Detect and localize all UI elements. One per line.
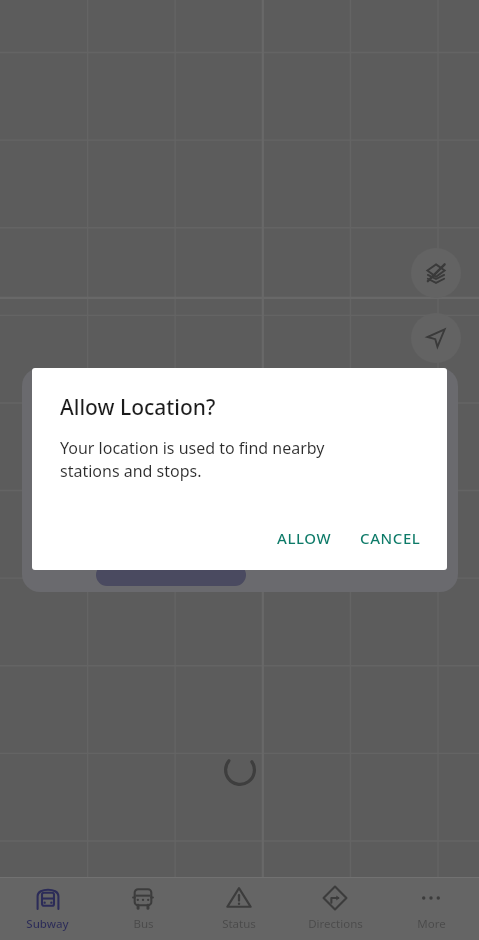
button[interactable]: Toggle map layers — [411, 248, 461, 298]
staticText: Directions — [308, 916, 363, 932]
staticText: Your location is used to find nearby sta… — [60, 437, 325, 482]
button[interactable]: CANCEL — [350, 520, 431, 556]
button[interactable]: Subway — [0, 878, 95, 940]
staticText: Subway — [26, 916, 69, 932]
button[interactable]: ALLOW — [267, 520, 342, 556]
staticText: CANCEL — [360, 528, 421, 548]
button[interactable]: My location — [411, 313, 461, 363]
staticText: Bus — [133, 916, 154, 932]
staticText: ALLOW — [277, 528, 332, 548]
button[interactable]: More — [383, 878, 479, 940]
button[interactable]: Directions — [287, 878, 383, 940]
button[interactable]: Status — [191, 878, 287, 940]
staticText: More — [417, 916, 446, 932]
button[interactable]: Bus — [95, 878, 191, 940]
staticText: Status — [222, 916, 256, 932]
staticText: Allow Location? — [60, 393, 216, 422]
